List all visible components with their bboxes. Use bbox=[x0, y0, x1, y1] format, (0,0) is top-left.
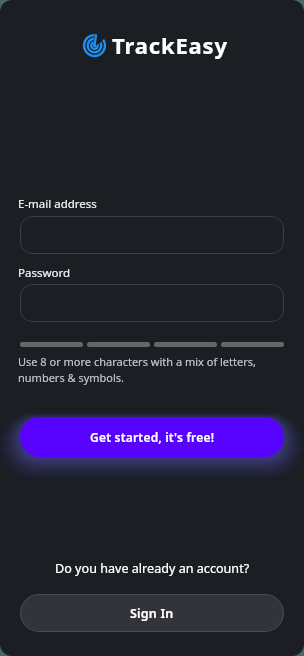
staticText: Get started, it's free! bbox=[90, 429, 215, 445]
staticText: Password bbox=[18, 265, 71, 281]
button[interactable] bbox=[20, 216, 284, 254]
staticText: TrackEasy bbox=[112, 30, 228, 60]
other: TrackEasy logo bbox=[83, 34, 106, 57]
button[interactable] bbox=[20, 284, 284, 322]
staticText: Use 8 or more characters with a mix of l… bbox=[18, 354, 256, 385]
button[interactable]: Sign In bbox=[20, 594, 284, 632]
button[interactable]: Get started, it's free! bbox=[20, 417, 284, 457]
staticText: Sign In bbox=[130, 605, 174, 622]
staticText: E-mail address bbox=[18, 196, 97, 212]
staticText: Do you have already an account? bbox=[55, 560, 250, 577]
